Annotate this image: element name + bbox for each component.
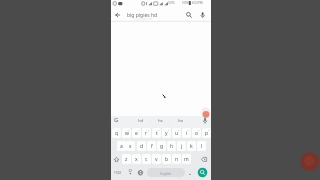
staticText: 2 [128,129,130,132]
staticText: c [145,156,148,163]
staticText: z [125,156,128,163]
button[interactable]: i [182,128,191,138]
button[interactable]: q [112,128,121,138]
button[interactable]: j [177,141,186,151]
staticText: h [170,143,174,150]
button[interactable]: f [147,141,156,151]
staticText: G [114,116,119,124]
button[interactable]: r [142,128,151,138]
button[interactable]: s [126,141,135,151]
staticText: l [201,143,203,150]
button[interactable]: z [122,154,131,164]
staticText: g [160,143,164,150]
staticText: v [155,156,158,163]
button[interactable]: t [152,128,161,138]
button[interactable]: u [172,128,181,138]
staticText: 100% [168,1,175,5]
staticText: 1 [118,129,120,132]
staticText: i [186,130,188,137]
staticText: 7 [178,129,180,132]
button[interactable]: h [167,141,176,151]
staticText: 9 [198,129,200,132]
staticText: 6 [168,129,170,132]
staticText: 0 [208,129,210,132]
staticText: 6:53 PM [192,1,203,5]
staticText: d [140,143,144,150]
staticText: m [184,156,189,163]
staticText: 5 [158,129,160,132]
staticText: y [165,130,168,137]
staticText: q [115,130,119,137]
button[interactable]: English [147,168,185,177]
button[interactable]: g [157,141,166,151]
button[interactable]: x [132,154,141,164]
button[interactable]: e [132,128,141,138]
button[interactable]: d [137,141,146,151]
staticText: o [195,130,199,137]
staticText: big pigies hd [127,12,158,19]
button[interactable]: a [117,141,126,151]
button[interactable]: l [197,141,206,151]
button[interactable]: c [142,154,151,164]
button[interactable] [112,168,124,178]
staticText: t [156,130,158,137]
button[interactable]: k [187,141,196,151]
button[interactable] [111,8,211,22]
staticText: hd [138,118,144,124]
staticText: 3 [138,129,140,132]
staticText: u [175,130,179,137]
button[interactable]: m [182,154,191,164]
button[interactable]: w [122,128,131,138]
staticText: ?123 [114,171,121,175]
staticText: ha [178,118,183,124]
button[interactable]: p [202,128,211,138]
button[interactable]: n [172,154,181,164]
staticText: x [135,156,138,163]
button[interactable]: y [162,128,171,138]
staticText: f [151,143,153,150]
staticText: r [145,130,148,137]
staticText: 8 [188,129,190,132]
staticText: w [125,130,129,137]
staticText: big pigies hd [134,17,153,21]
staticText: 4 [148,129,150,132]
staticText: p [205,130,209,137]
staticText: he [158,118,163,124]
button[interactable]: o [192,128,201,138]
staticText: a [120,143,123,150]
staticText: 100% [182,1,189,5]
button[interactable] [198,168,208,178]
button[interactable]: v [152,154,161,164]
staticText: English [160,171,172,175]
staticText: j [181,143,183,150]
staticText: k [190,143,193,150]
staticText: s [129,143,132,150]
staticText: n [175,156,179,163]
button[interactable]: b [162,154,171,164]
staticText: e [135,130,138,137]
staticText: b [165,156,169,163]
